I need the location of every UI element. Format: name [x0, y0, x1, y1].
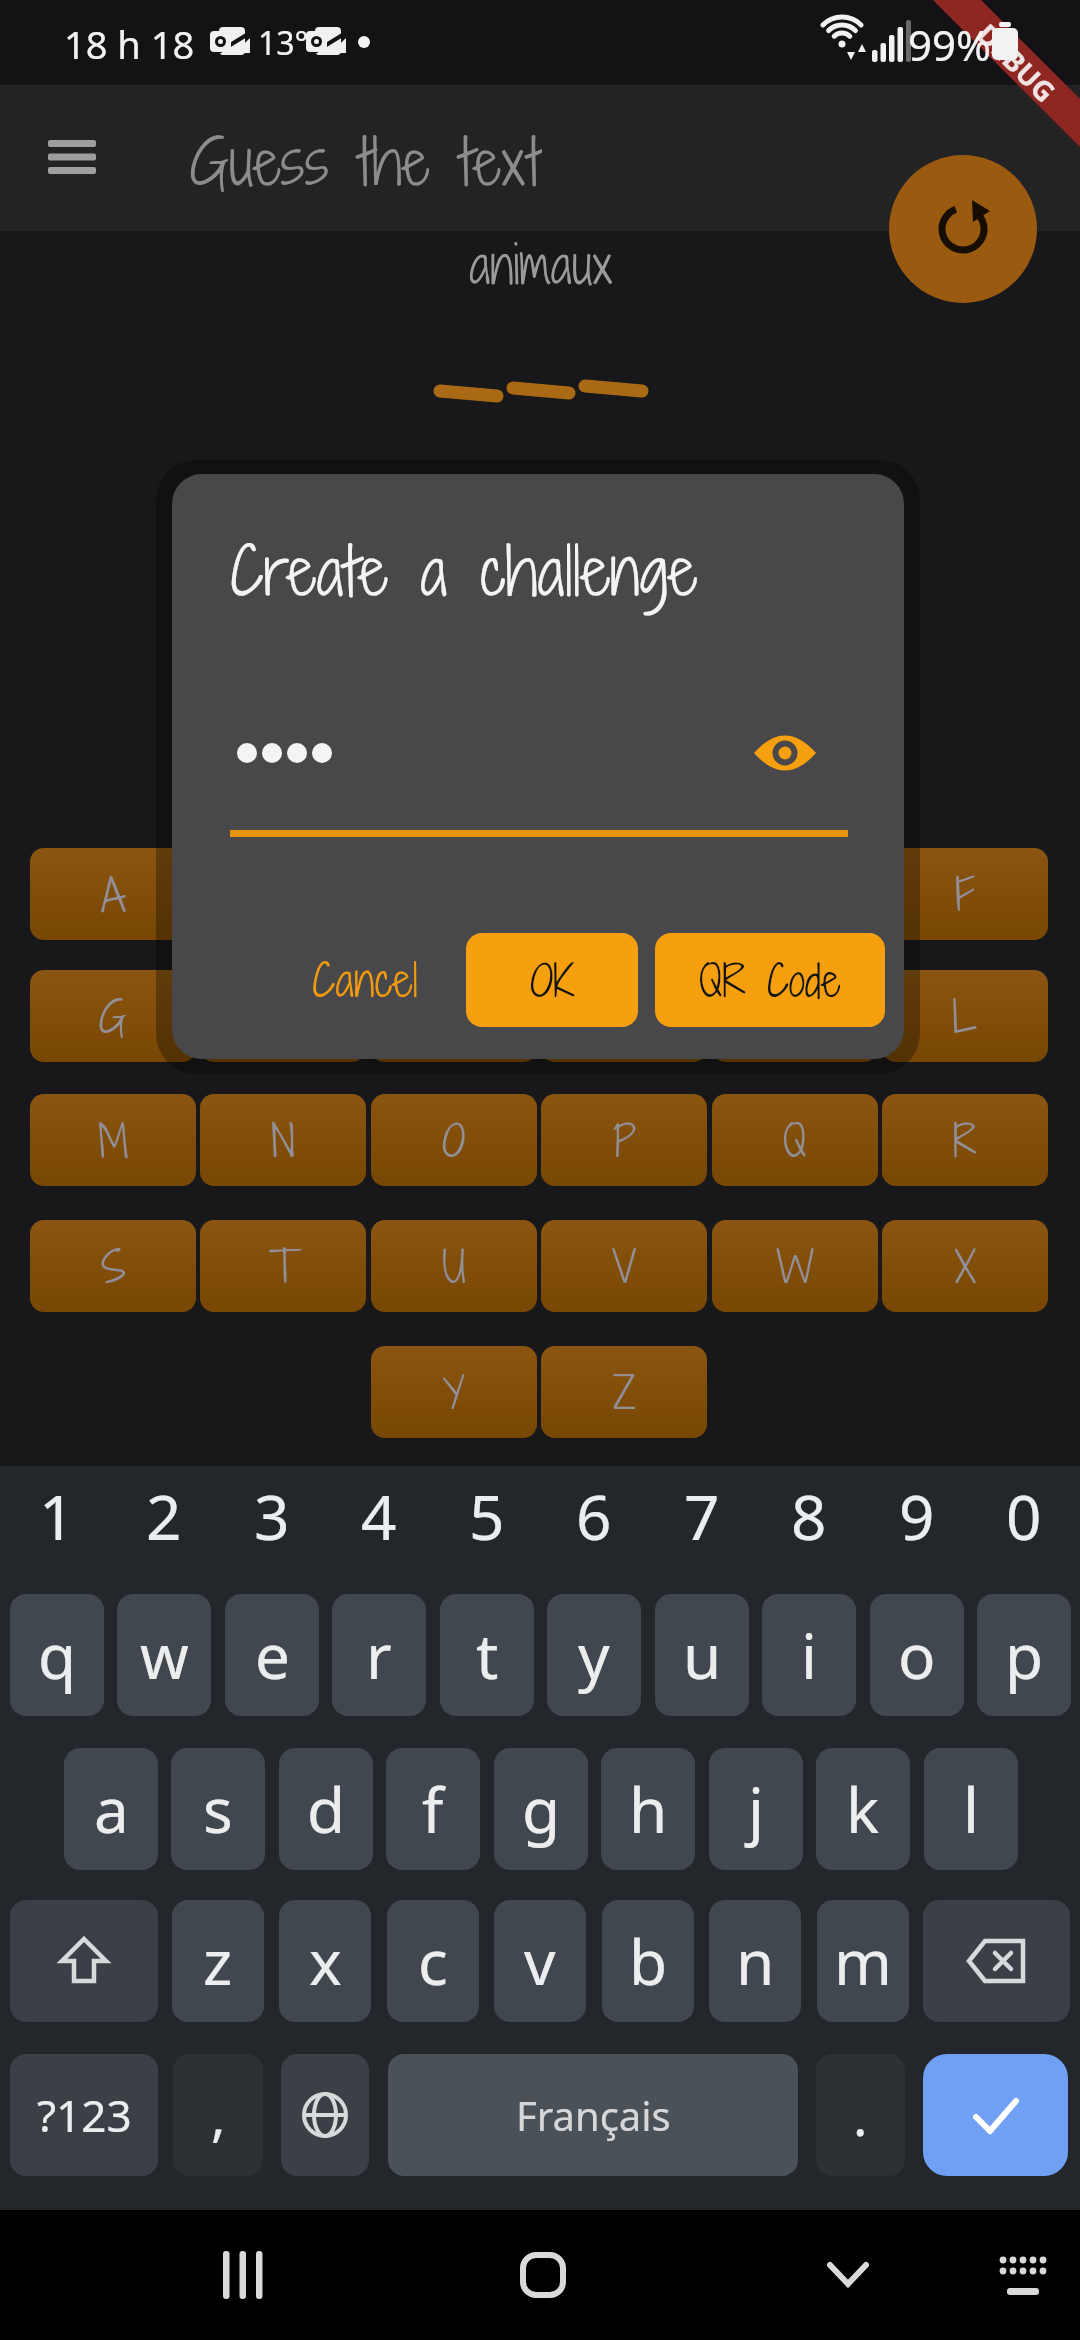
button[interactable]: 9 [870, 1474, 964, 1546]
button[interactable]: . [816, 2054, 905, 2176]
button[interactable]: 3 [225, 1474, 319, 1546]
button[interactable]: j [709, 1748, 803, 1870]
button[interactable]: o [870, 1594, 964, 1716]
staticText: Guess the text [190, 118, 542, 198]
button[interactable]: 6 [547, 1474, 641, 1546]
button[interactable]: A [30, 848, 196, 940]
button[interactable]: b [602, 1900, 694, 2022]
staticText: u [683, 1613, 722, 1697]
staticText: F [955, 864, 975, 925]
button[interactable] [205, 2240, 281, 2310]
staticText: S [101, 1236, 126, 1297]
button[interactable]: N [200, 1094, 366, 1186]
button[interactable] [10, 1900, 158, 2022]
button[interactable]: Français [388, 2054, 798, 2176]
button[interactable]: 5 [440, 1474, 534, 1546]
button[interactable]: ?123 [10, 2054, 158, 2176]
button[interactable] [985, 2240, 1061, 2310]
button[interactable]: w [117, 1594, 211, 1716]
staticText: x [309, 1919, 342, 2003]
button[interactable] [742, 718, 828, 788]
button[interactable]: Z [541, 1346, 707, 1438]
button[interactable] [281, 2054, 369, 2176]
button[interactable]: I [371, 970, 537, 1062]
button[interactable]: n [709, 1900, 801, 2022]
button[interactable]: 7 [655, 1474, 749, 1546]
button[interactable]: E [712, 848, 878, 940]
button[interactable]: s [171, 1748, 265, 1870]
button[interactable]: f [386, 1748, 480, 1870]
staticText: 3 [254, 1474, 290, 1546]
button[interactable]: C [371, 848, 537, 940]
button[interactable]: J [541, 970, 707, 1062]
button[interactable]: 0 [977, 1474, 1071, 1546]
button[interactable]: 2 [117, 1474, 211, 1546]
button[interactable]: T [200, 1220, 366, 1312]
button[interactable]: L [882, 970, 1048, 1062]
button[interactable]: V [541, 1220, 707, 1312]
button[interactable] [889, 155, 1037, 303]
button[interactable] [923, 2054, 1068, 2176]
button[interactable]: a [64, 1748, 158, 1870]
staticText: b [629, 1919, 668, 2003]
staticText: Create a challenge [230, 524, 698, 616]
button[interactable] [923, 1900, 1070, 2022]
button[interactable]: OK [466, 933, 638, 1027]
button[interactable]: P [541, 1094, 707, 1186]
button[interactable]: QR Code [655, 933, 885, 1027]
staticText: v [524, 1919, 556, 2003]
button[interactable] [40, 125, 104, 189]
button[interactable]: x [279, 1900, 371, 2022]
button[interactable]: K [712, 970, 878, 1062]
button[interactable]: h [601, 1748, 695, 1870]
button[interactable]: 4 [332, 1474, 426, 1546]
button[interactable]: g [494, 1748, 588, 1870]
staticText: l [963, 1767, 979, 1851]
button[interactable]: v [494, 1900, 586, 2022]
button[interactable]: p [977, 1594, 1071, 1716]
button[interactable]: e [225, 1594, 319, 1716]
staticText: d [307, 1767, 346, 1851]
button[interactable]: S [30, 1220, 196, 1312]
button[interactable]: Y [371, 1346, 537, 1438]
button[interactable] [505, 2240, 581, 2310]
button[interactable]: D [541, 848, 707, 940]
button[interactable]: d [279, 1748, 373, 1870]
button[interactable]: y [547, 1594, 641, 1716]
button[interactable]: l [924, 1748, 1018, 1870]
button[interactable]: t [440, 1594, 534, 1716]
staticText: R [953, 1110, 977, 1171]
button[interactable]: O [371, 1094, 537, 1186]
button[interactable]: F [882, 848, 1048, 940]
button[interactable]: , [173, 2054, 263, 2176]
button[interactable]: U [371, 1220, 537, 1312]
button[interactable]: Cancel [295, 938, 435, 1022]
button[interactable]: X [882, 1220, 1048, 1312]
staticText: Cancel [312, 948, 418, 1012]
button[interactable] [810, 2240, 886, 2310]
button[interactable]: m [817, 1900, 909, 2022]
button[interactable]: i [762, 1594, 856, 1716]
button[interactable]: z [172, 1900, 264, 2022]
button[interactable]: Q [712, 1094, 878, 1186]
button[interactable]: M [30, 1094, 196, 1186]
button[interactable]: H [200, 970, 366, 1062]
staticText: p [1005, 1613, 1044, 1697]
staticText: Y [443, 1362, 465, 1423]
button[interactable]: r [332, 1594, 426, 1716]
button[interactable]: G [30, 970, 196, 1062]
staticText: 8 [791, 1474, 827, 1546]
button[interactable]: 8 [762, 1474, 856, 1546]
button[interactable]: u [655, 1594, 749, 1716]
button[interactable]: c [387, 1900, 479, 2022]
button[interactable]: q [10, 1594, 104, 1716]
staticText: 6 [576, 1474, 612, 1546]
button[interactable]: R [882, 1094, 1048, 1186]
staticText: z [203, 1919, 233, 2003]
button[interactable]: k [816, 1748, 910, 1870]
button[interactable]: W [712, 1220, 878, 1312]
button[interactable]: 1 [10, 1474, 104, 1546]
